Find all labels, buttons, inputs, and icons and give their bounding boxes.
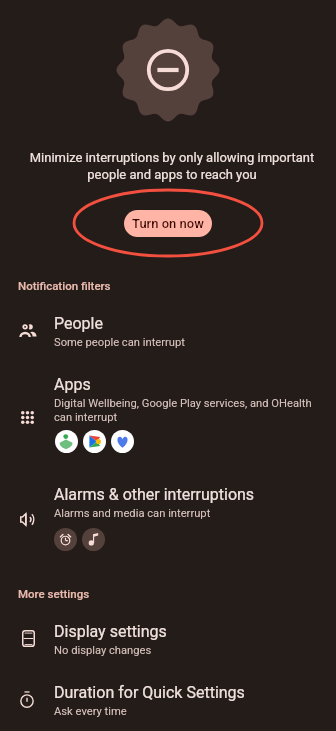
button[interactable]: People	[0, 314, 336, 358]
staticText: Apps	[54, 375, 91, 394]
button[interactable]: Apps	[0, 375, 336, 459]
staticText: Minimize interruptions by only allowing …	[22, 150, 322, 183]
button[interactable]: Alarms & other interruptions	[0, 485, 336, 559]
staticText: People	[54, 314, 103, 333]
button[interactable]: Display settings	[0, 622, 336, 666]
staticText: Digital Wellbeing, Google Play services,…	[54, 397, 326, 424]
staticText: Some people can interrupt	[54, 336, 185, 349]
staticText: Alarms and media can interrupt	[54, 507, 211, 520]
staticText: More settings	[18, 587, 90, 600]
staticText: Display settings	[54, 622, 167, 641]
button[interactable]: Turn on now	[124, 210, 212, 237]
staticText: Ask every time	[54, 705, 127, 718]
staticText: Turn on now	[132, 216, 204, 231]
staticText: Alarms & other interruptions	[54, 485, 255, 504]
staticText: Duration for Quick Settings	[54, 683, 245, 702]
staticText: No display changes	[54, 644, 152, 657]
button[interactable]: Duration for Quick Settings	[0, 683, 336, 727]
staticText: Notification filters	[18, 279, 111, 292]
